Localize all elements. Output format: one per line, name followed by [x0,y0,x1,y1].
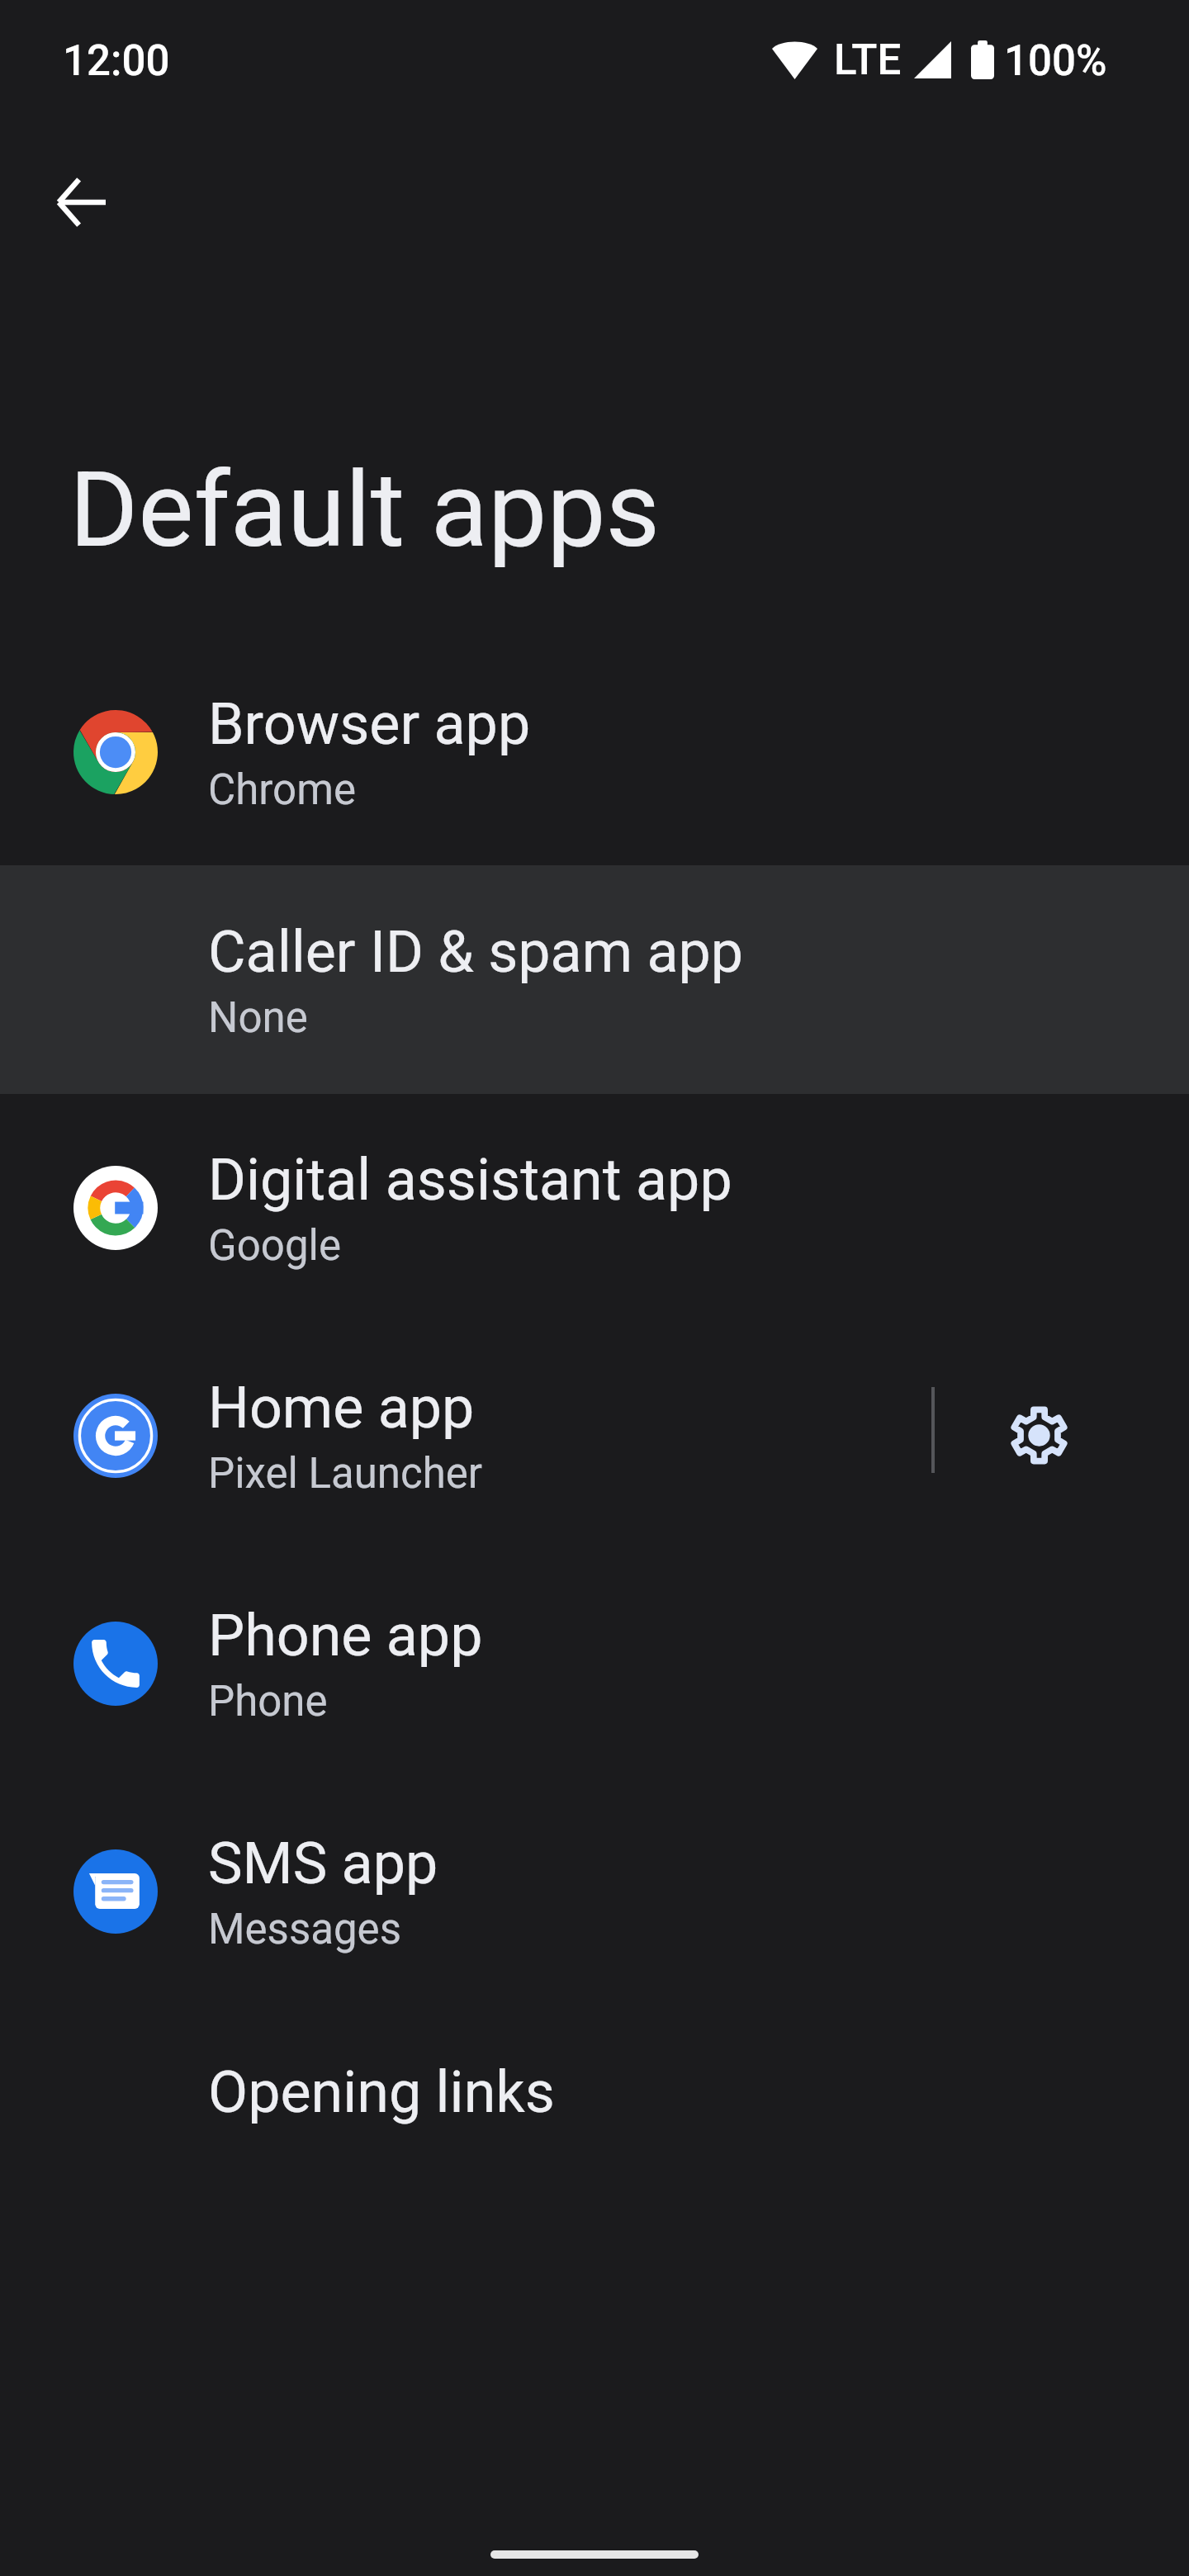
staticText: Pixel Launcher [208,1449,483,1499]
button[interactable]: Opening links [0,2005,1189,2234]
staticText: 12:00 [63,36,170,86]
staticText: Google [208,1221,341,1271]
staticText: Phone app [208,1602,483,1669]
staticText: None [208,993,308,1043]
button[interactable]: Digital assistant app [0,1093,1189,1322]
staticText: Phone [208,1677,328,1726]
button[interactable]: Navigate up [21,143,140,262]
staticText: Browser app [208,690,531,758]
staticText: Caller ID & spam app [208,918,744,986]
staticText: Chrome [208,765,356,815]
button[interactable]: Browser app [0,637,1189,866]
button[interactable]: Home app [0,1321,1189,1550]
staticText: Home app [208,1374,475,1442]
button[interactable]: Caller ID & spam app [0,865,1189,1094]
staticText: Digital assistant app [208,1146,732,1214]
staticText: LTE [834,36,902,85]
staticText: SMS app [208,1830,438,1897]
button[interactable]: SMS app [0,1777,1189,2005]
staticText: 100% [1004,36,1107,86]
staticText: Messages [208,1905,401,1954]
staticText: Opening links [208,2058,555,2126]
button[interactable]: Phone app [0,1549,1189,1778]
staticText: Default apps [69,448,661,571]
button[interactable]: Home app settings [982,1378,1096,1492]
